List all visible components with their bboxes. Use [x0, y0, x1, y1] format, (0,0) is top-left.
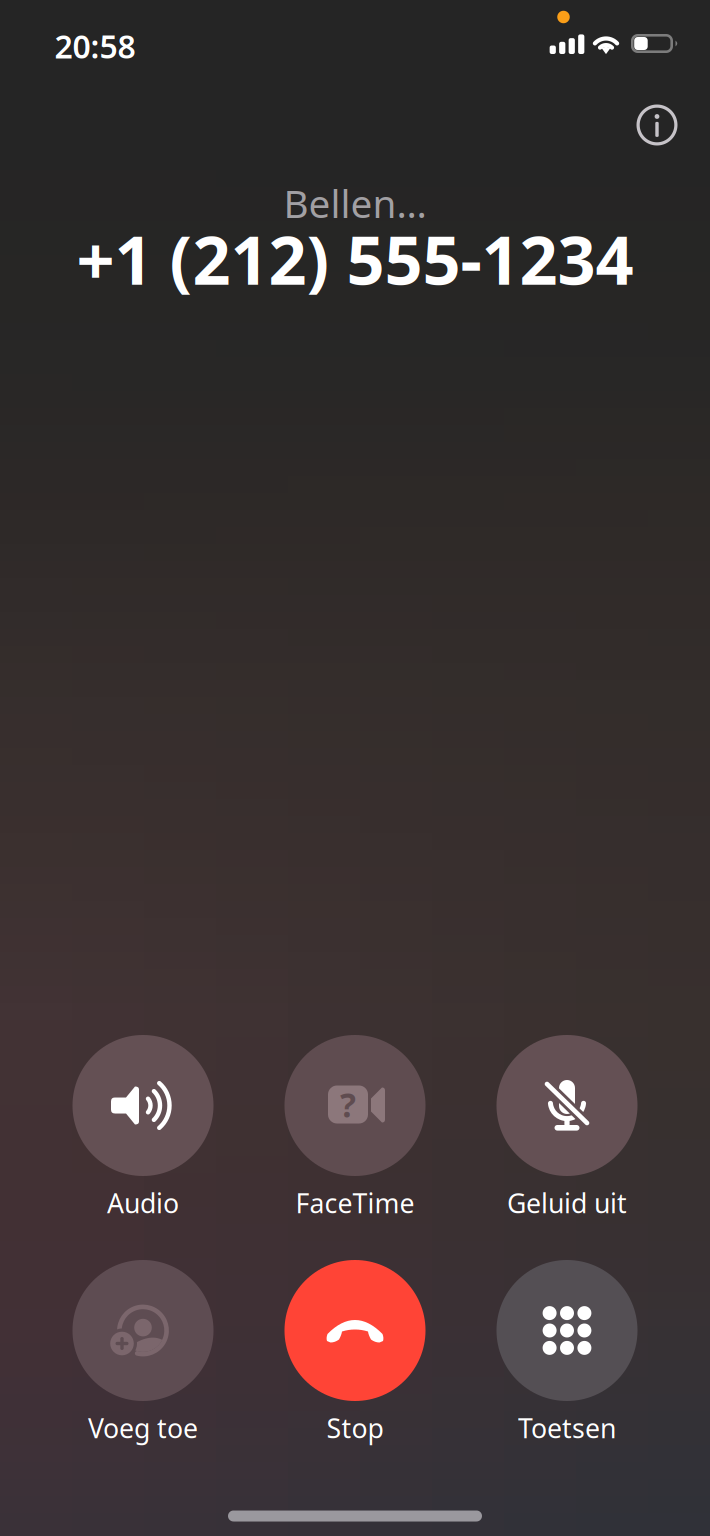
button[interactable]: ? [260, 1035, 450, 1230]
button[interactable]: Voeg toe [48, 1260, 238, 1455]
button[interactable]: Toetsen [472, 1260, 662, 1455]
staticText: Audio [107, 1185, 179, 1221]
button[interactable]: Geluid uit [472, 1035, 662, 1230]
staticText: ? [340, 1082, 356, 1127]
staticText: Toetsen [518, 1410, 616, 1446]
staticText: 20:58 [54, 25, 135, 67]
button[interactable]: Gegevens [619, 87, 695, 163]
button[interactable]: Audio [48, 1035, 238, 1230]
staticText: Bellen... [283, 177, 426, 229]
button[interactable]: Stop [260, 1260, 450, 1455]
staticText: Voeg toe [88, 1410, 198, 1446]
staticText: FaceTime [295, 1185, 414, 1221]
staticText: Stop [326, 1410, 383, 1446]
staticText: Geluid uit [507, 1185, 627, 1221]
staticText: +1 (212) 555-1234 [76, 215, 633, 303]
